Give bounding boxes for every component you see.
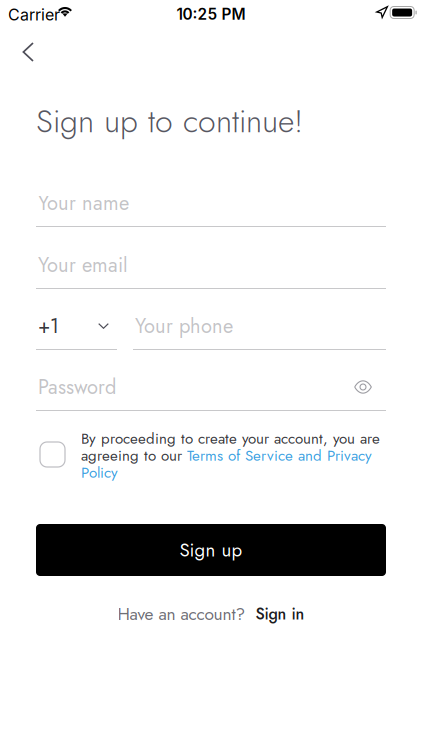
staticText: Terms of Service and Privacy [187, 445, 372, 466]
staticText: Carrier [8, 5, 60, 24]
button[interactable]: By proceeding to create your account, yo… [40, 431, 390, 487]
staticText: Sign up [179, 536, 242, 563]
button[interactable]: Back [0, 30, 52, 74]
staticText: agreeing to our [81, 445, 187, 466]
staticText: Have an account? [117, 601, 245, 626]
staticText: Your name [38, 188, 129, 217]
staticText: +1 [38, 311, 59, 340]
staticText: Sign in [255, 602, 304, 625]
staticText: Your email [38, 250, 128, 279]
staticText: Your phone [135, 311, 233, 340]
staticText: By proceeding to create your account, yo… [81, 428, 380, 449]
button[interactable]: Sign up [36, 524, 386, 576]
staticText: Sign up to continue! [36, 98, 303, 144]
staticText: 10:25 PM [176, 5, 245, 24]
button[interactable]: Sign in [255, 602, 304, 625]
staticText: Policy [81, 462, 118, 483]
button[interactable]: +1 [36, 316, 117, 350]
staticText: Password [38, 372, 116, 401]
